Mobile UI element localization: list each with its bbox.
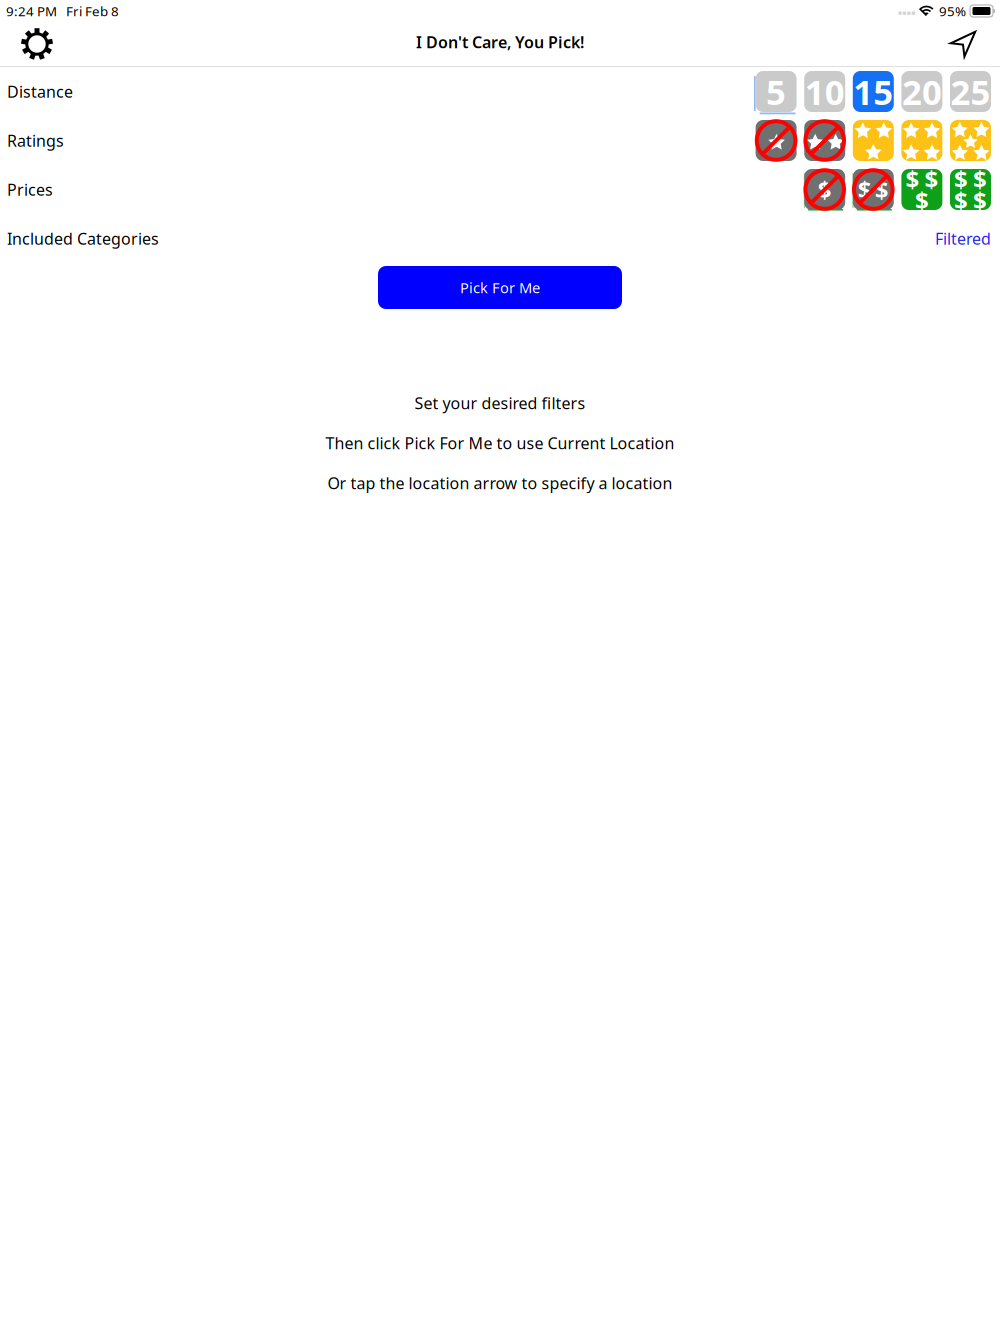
staticText: 15 [853,68,893,114]
staticText: $ [818,174,832,205]
button[interactable]: 15 [853,71,894,112]
staticText: Included Categories [7,228,159,249]
staticText: Pick For Me [460,278,540,297]
staticText: Or tap the location arrow to specify a l… [327,472,672,494]
button[interactable]: Exclude price level 2 [853,169,894,210]
button[interactable]: Include 4-star places [901,120,942,161]
button[interactable]: Settings [11,22,63,66]
button[interactable]: Exclude 1-star places [756,120,797,161]
button[interactable]: 10 [804,71,845,112]
button[interactable]: 5 [756,71,797,112]
staticText: $ [954,163,968,195]
staticText: $ [905,163,919,195]
button[interactable]: Exclude price level 1 [804,169,845,210]
staticText: 95% [939,2,966,20]
staticText: $ [858,174,872,205]
button[interactable]: Exclude 2-star places [804,120,845,161]
button[interactable]: Include price level 3 [901,169,942,210]
staticText: 25 [950,68,990,114]
button[interactable]: Pick For Me [378,266,622,309]
staticText: 9:24 PM [6,2,57,20]
staticText: Distance [7,81,73,102]
staticText: Then click Pick For Me to use Current Lo… [325,432,674,454]
button[interactable]: 20 [901,71,942,112]
staticText: Prices [7,179,53,200]
staticText: 10 [805,68,845,114]
staticText: $ [954,184,968,216]
button[interactable]: Include 5-star places [950,120,991,161]
button[interactable]: Filtered [935,228,991,249]
staticText: $ [973,184,987,216]
staticText: I Don't Care, You Pick! [416,31,584,53]
staticText: Ratings [7,130,64,151]
staticText: Set your desired filters [414,392,585,414]
staticText: Filtered [935,228,991,249]
staticText: $ [924,163,938,195]
staticText: $ [973,163,987,195]
button[interactable]: Include price level 4 [950,169,991,210]
staticText: $ [875,174,889,205]
staticText: Fri Feb 8 [66,2,119,20]
button[interactable]: Use a specific location [937,22,989,66]
button[interactable]: 25 [950,71,991,112]
staticText: 5 [766,68,786,114]
staticText: 20 [902,68,942,114]
staticText: $ [915,184,929,216]
button[interactable]: Include 3-star places [853,120,894,161]
